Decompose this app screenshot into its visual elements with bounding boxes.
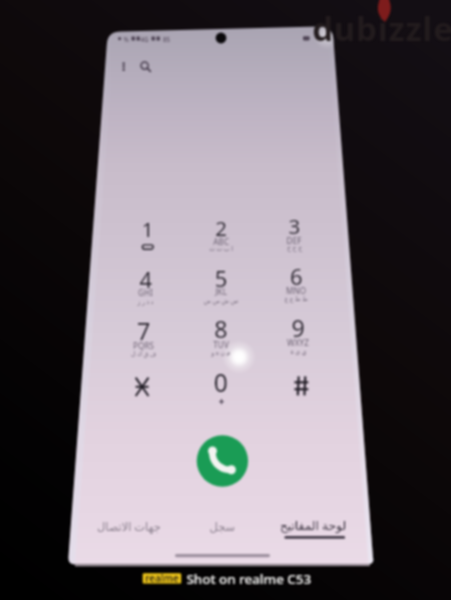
button[interactable]: 2 ABC [187,207,256,255]
button[interactable]: 6 MNO [261,257,332,305]
button[interactable]: Recents [180,510,266,544]
button[interactable]: 9 WXYZ [262,309,335,357]
button[interactable]: 4 GHI [110,257,181,305]
button[interactable]: Search contacts [130,51,160,81]
button[interactable]: 5 JKL [186,257,257,305]
button[interactable]: Contacts [86,510,172,544]
button[interactable]: 1 voicemail [113,207,182,255]
button[interactable]: 8 TUV [185,309,258,357]
button[interactable]: Keypad [270,510,356,544]
button[interactable]: More options [109,51,139,81]
button[interactable]: 3 DEF [260,207,329,255]
button[interactable]: 7 PQRS [107,309,180,357]
button[interactable]: 0 plus [183,363,259,411]
button[interactable]: star [104,363,180,411]
button[interactable]: hash [263,363,339,411]
button[interactable]: Call [194,433,250,489]
